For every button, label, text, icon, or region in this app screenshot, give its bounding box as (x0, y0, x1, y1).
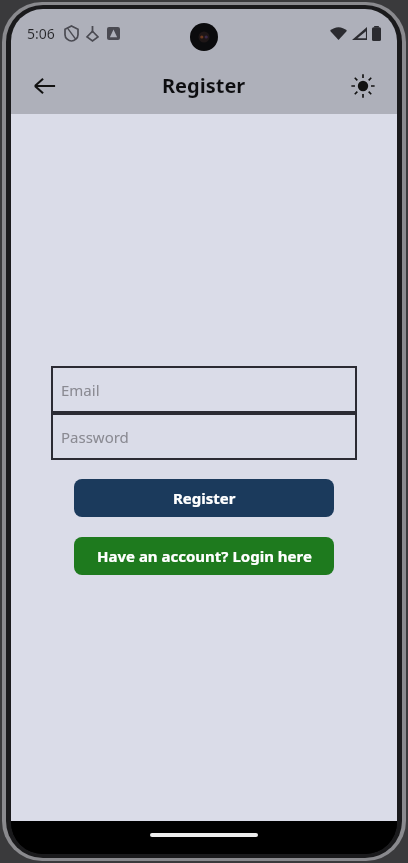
button[interactable]: Have an account? Login here (74, 537, 334, 575)
button[interactable]: Toggle theme (341, 64, 385, 108)
staticText: Register (173, 488, 236, 508)
staticText: Have an account? Login here (97, 546, 312, 566)
button[interactable]: Register (74, 479, 334, 517)
button[interactable]: Email (51, 366, 357, 413)
staticText: Password (61, 427, 129, 447)
staticText: 5:06 (27, 24, 55, 43)
button[interactable]: Password (51, 413, 357, 460)
staticText: Email (61, 380, 100, 400)
staticText: Register (162, 72, 246, 99)
button[interactable]: Back (23, 64, 67, 108)
